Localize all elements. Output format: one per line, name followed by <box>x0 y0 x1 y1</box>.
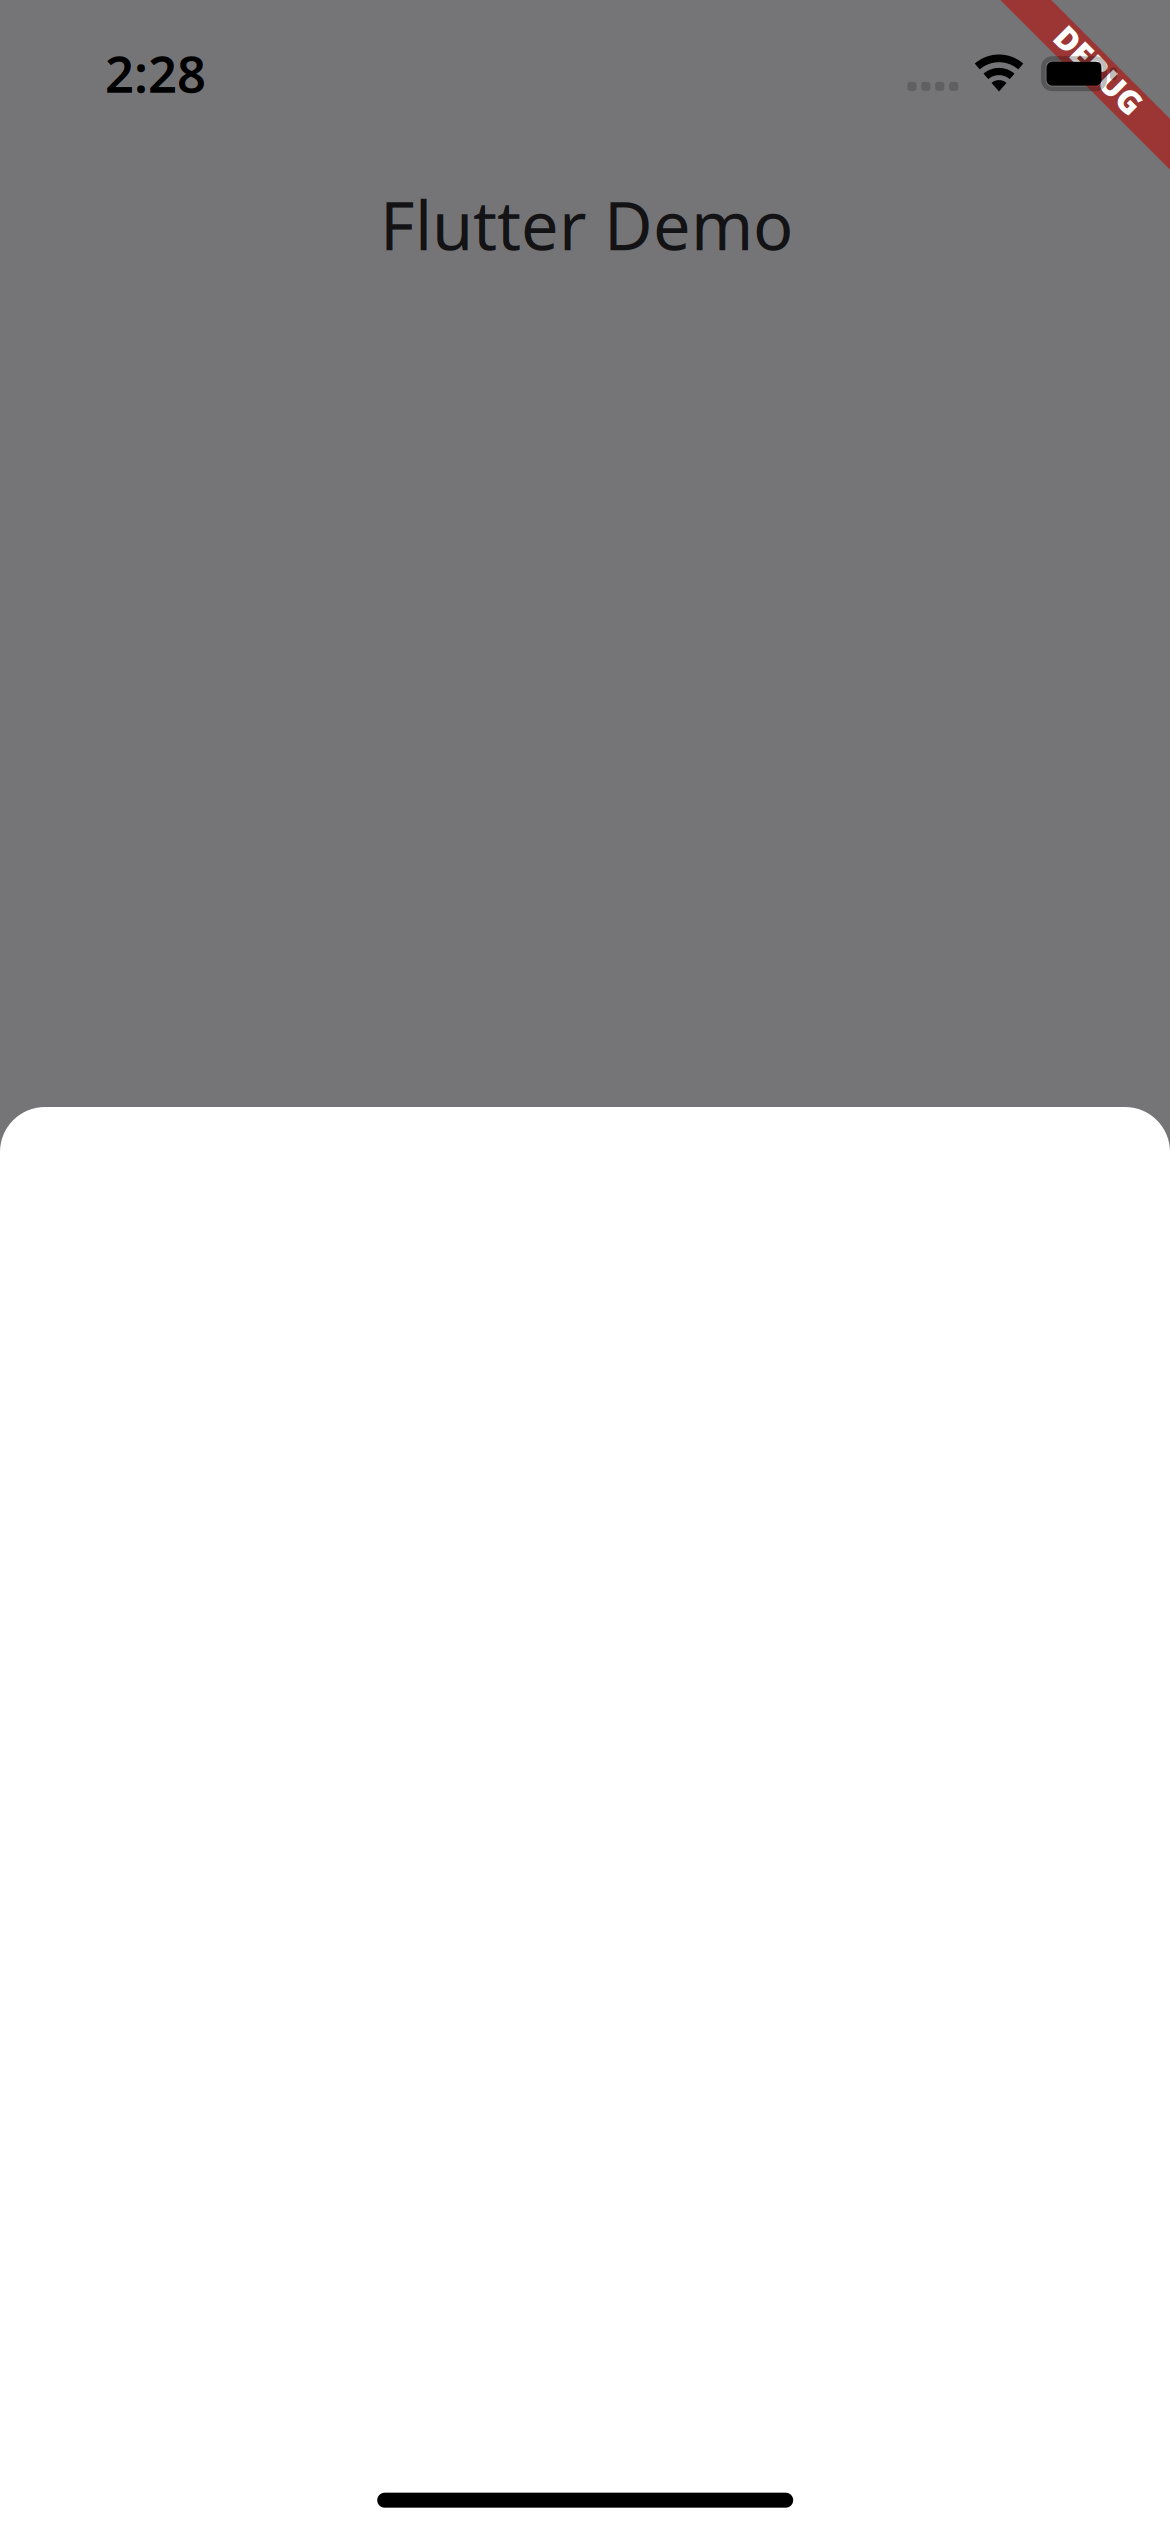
button[interactable]: Dismiss bottom sheet <box>0 0 1170 2532</box>
staticText: Flutter Demo <box>380 180 793 269</box>
staticText: 2:28 <box>105 39 206 107</box>
staticText: DEBUG <box>1043 49 1154 91</box>
